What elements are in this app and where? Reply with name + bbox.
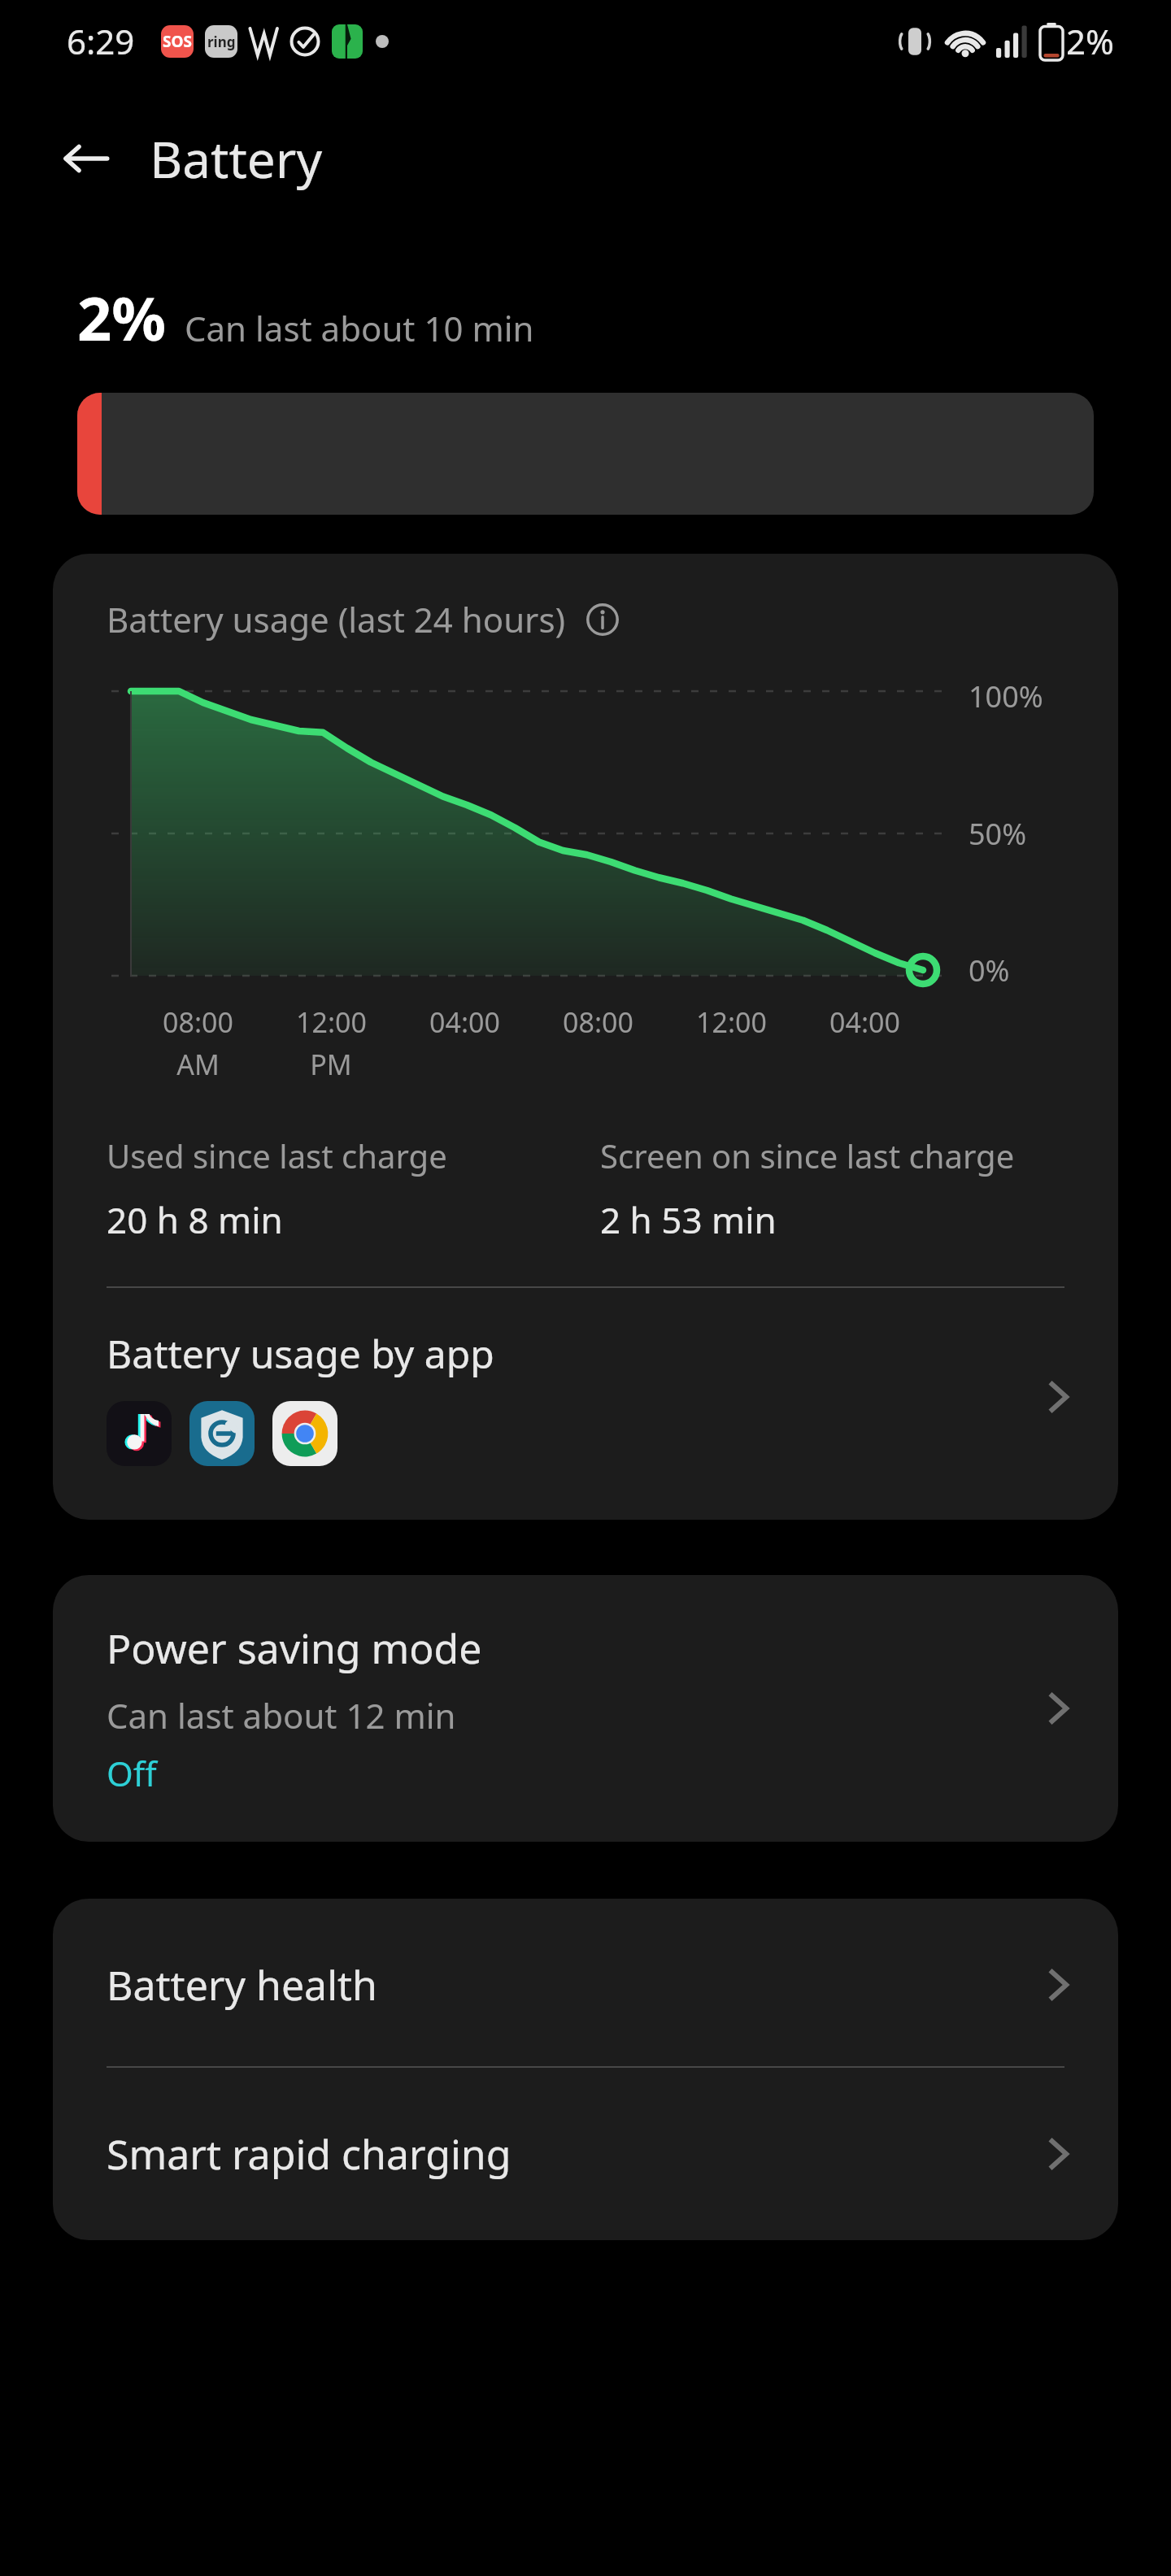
button[interactable]: Battery health bbox=[53, 1899, 1118, 2066]
staticText: Used since last charge bbox=[107, 1134, 447, 1177]
staticText: Can last about 12 min bbox=[107, 1692, 456, 1738]
staticText: Battery usage (last 24 hours) bbox=[107, 596, 566, 642]
staticText: Smart rapid charging bbox=[107, 2126, 1040, 2182]
staticText: Battery bbox=[150, 124, 323, 193]
staticText: 20 h 8 min bbox=[107, 1195, 283, 1244]
staticText: 0% bbox=[969, 951, 1010, 990]
staticText: 100% bbox=[969, 677, 1043, 716]
staticText: 08:00 bbox=[563, 1003, 633, 1041]
staticText: Can last about 10 min bbox=[185, 305, 534, 351]
button[interactable]: Power saving mode bbox=[53, 1575, 1118, 1842]
staticText: Power saving mode bbox=[107, 1621, 482, 1676]
button[interactable]: Back bbox=[42, 115, 130, 202]
button[interactable]: Smart rapid charging bbox=[53, 2068, 1118, 2240]
button[interactable]: Battery usage by app bbox=[53, 1321, 1118, 1473]
staticText: ring bbox=[207, 33, 236, 51]
staticText: Battery health bbox=[107, 1957, 1040, 2012]
staticText: 6:29 bbox=[67, 18, 135, 64]
staticText: SOS bbox=[163, 31, 192, 52]
staticText: 08:00 bbox=[163, 1003, 233, 1041]
staticText: Battery usage by app bbox=[107, 1327, 494, 1380]
button[interactable]: Info bbox=[581, 598, 625, 642]
staticText: 12:00 bbox=[696, 1003, 767, 1041]
staticText: 2% bbox=[1066, 18, 1114, 64]
staticText: 50% bbox=[969, 814, 1027, 854]
staticText: Screen on since last charge bbox=[600, 1134, 1015, 1177]
staticText: 04:00 bbox=[429, 1003, 500, 1041]
staticText: 04:00 bbox=[829, 1003, 900, 1041]
staticText: AM bbox=[176, 1046, 220, 1083]
staticText: Off bbox=[107, 1750, 157, 1796]
staticText: PM bbox=[310, 1046, 352, 1083]
staticText: 12:00 bbox=[296, 1003, 367, 1041]
staticText: 2% bbox=[77, 276, 167, 359]
staticText: 2 h 53 min bbox=[600, 1195, 777, 1244]
